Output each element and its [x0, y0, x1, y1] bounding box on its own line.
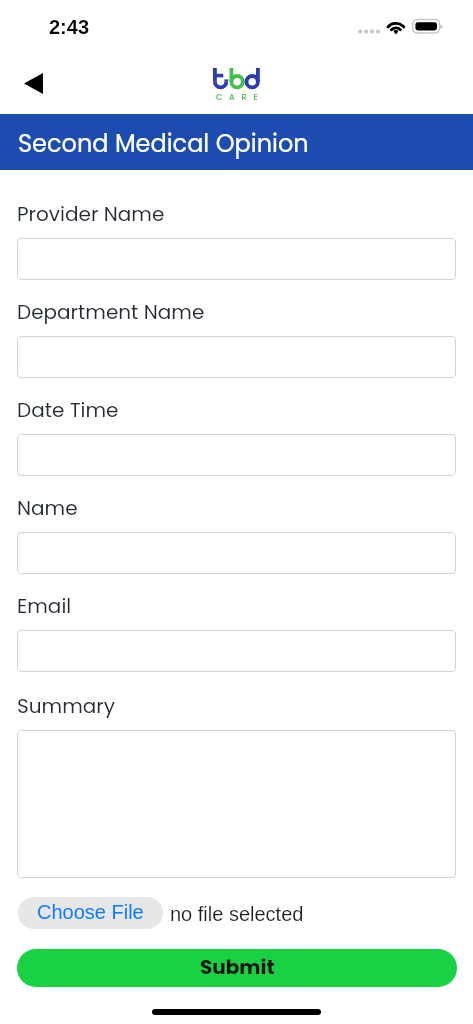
button[interactable]: Choose File — [18, 897, 163, 929]
button[interactable]: Back — [11, 61, 55, 105]
button[interactable] — [17, 532, 456, 574]
staticText: Choose File — [37, 901, 144, 923]
staticText: Department Name — [17, 298, 205, 326]
staticText: Submit — [200, 953, 275, 981]
button[interactable]: Second Medical Opinion — [0, 114, 473, 170]
button[interactable] — [17, 336, 456, 378]
staticText: Second Medical Opinion — [18, 127, 309, 161]
staticText: Name — [17, 494, 78, 522]
staticText: Summary — [17, 692, 115, 720]
staticText: Email — [17, 592, 72, 620]
staticText: Provider Name — [17, 200, 165, 228]
staticText: C A R E — [216, 92, 261, 103]
button[interactable] — [17, 434, 456, 476]
button[interactable]: Submit — [17, 949, 457, 987]
staticText: Date Time — [17, 396, 119, 424]
staticText: 2:43 — [49, 16, 90, 38]
button[interactable] — [17, 630, 456, 672]
staticText: no file selected — [170, 903, 304, 925]
button[interactable] — [17, 238, 456, 280]
button[interactable] — [17, 730, 456, 878]
